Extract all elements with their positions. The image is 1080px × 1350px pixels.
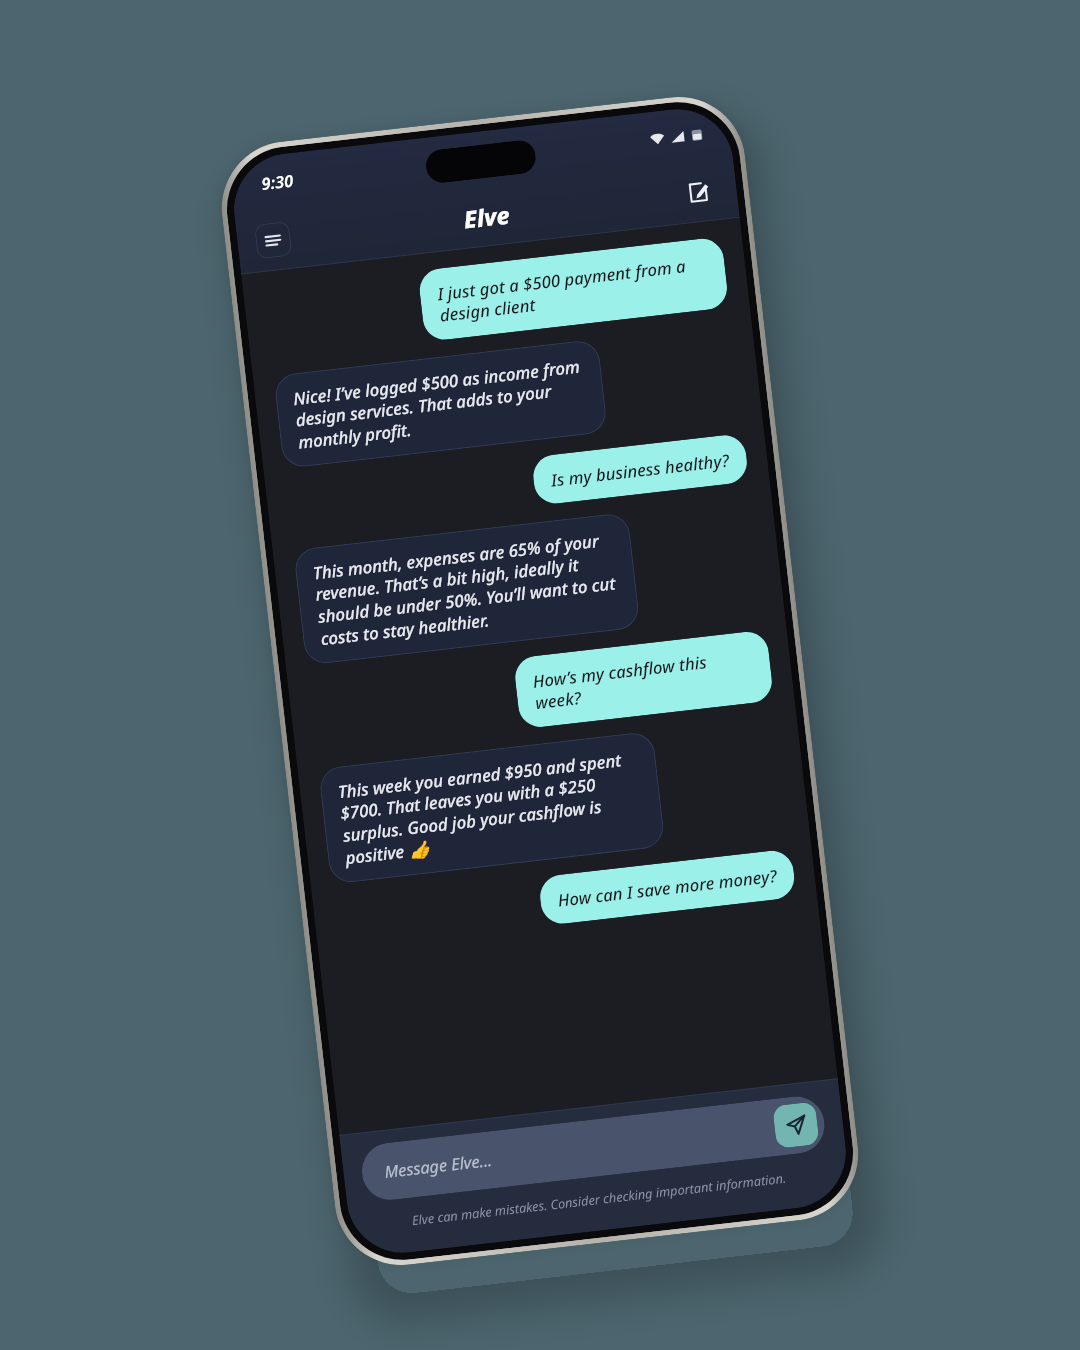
button[interactable]: How’s my cashflow this week? bbox=[513, 630, 774, 729]
staticText: Elve bbox=[462, 198, 512, 235]
staticText: Elve can make mistakes. Consider checkin… bbox=[363, 1164, 835, 1235]
button[interactable]: Nice! I’ve logged $500 as income from de… bbox=[273, 339, 608, 469]
staticText: I just got a $500 payment from a design … bbox=[436, 251, 711, 327]
staticText: How can I save more money? bbox=[556, 864, 778, 911]
button[interactable]: This month, expenses are 65% of your rev… bbox=[293, 512, 641, 665]
button[interactable]: Is my business healthy? bbox=[531, 433, 749, 506]
button[interactable]: Message Elve... bbox=[359, 1093, 827, 1203]
staticText: Nice! I’ve logged $500 as income from de… bbox=[292, 354, 589, 454]
staticText: 9:30 bbox=[260, 169, 294, 195]
staticText: How’s my cashflow this week? bbox=[531, 645, 755, 714]
staticText: Message Elve... bbox=[383, 1116, 776, 1183]
button[interactable]: I just got a $500 payment from a design … bbox=[417, 236, 729, 342]
button[interactable]: New chat bbox=[677, 171, 718, 212]
staticText: This week you earned $950 and spent $700… bbox=[337, 746, 647, 869]
button[interactable]: This week you earned $950 and spent $700… bbox=[318, 731, 666, 884]
button[interactable]: Menu bbox=[254, 221, 292, 259]
button[interactable]: How can I save more money? bbox=[538, 848, 797, 926]
button[interactable]: Send bbox=[772, 1101, 820, 1149]
staticText: Is my business healthy? bbox=[550, 448, 731, 491]
staticText: This month, expenses are 65% of your rev… bbox=[312, 527, 622, 650]
